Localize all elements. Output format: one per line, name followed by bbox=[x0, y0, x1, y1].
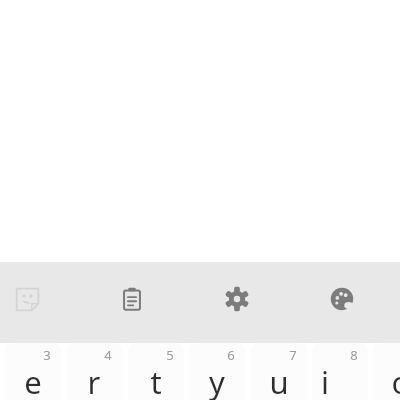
staticText: 7 bbox=[284, 346, 302, 364]
button[interactable]: 4 bbox=[66, 343, 122, 400]
button[interactable]: Stickers bbox=[5, 277, 49, 321]
button[interactable]: 3 bbox=[5, 343, 61, 400]
button[interactable]: Clipboard bbox=[110, 277, 154, 321]
staticText: t bbox=[128, 361, 184, 400]
staticText: 3 bbox=[38, 346, 56, 364]
staticText: 5 bbox=[161, 346, 179, 364]
staticText: y bbox=[189, 361, 245, 400]
staticText: 8 bbox=[345, 346, 363, 364]
button[interactable]: 8 bbox=[312, 343, 368, 400]
staticText: u bbox=[251, 361, 307, 400]
staticText: r bbox=[66, 361, 122, 400]
staticText: e bbox=[5, 361, 61, 400]
button[interactable]: 7 bbox=[251, 343, 307, 400]
button[interactable]: 9 bbox=[373, 343, 400, 400]
staticText: 4 bbox=[99, 346, 117, 364]
staticText: i bbox=[312, 361, 340, 400]
button[interactable]: 6 bbox=[189, 343, 245, 400]
staticText: o bbox=[373, 361, 400, 400]
button[interactable]: Settings bbox=[215, 277, 259, 321]
button[interactable]: 5 bbox=[128, 343, 184, 400]
button[interactable]: Themes bbox=[320, 277, 364, 321]
staticText: 6 bbox=[222, 346, 240, 364]
